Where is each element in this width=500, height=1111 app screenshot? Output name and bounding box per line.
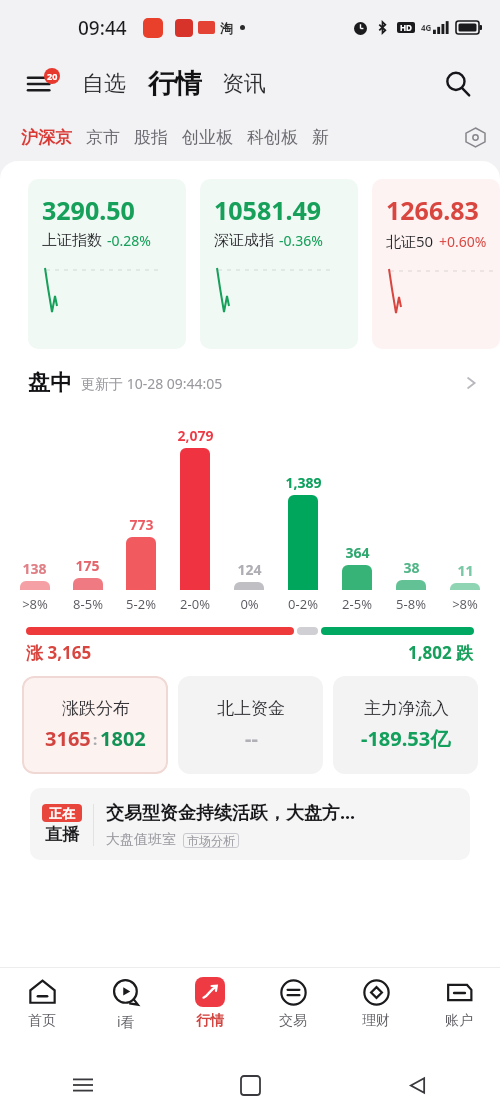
staticText: 1266.83: [386, 193, 479, 227]
staticText: 10581.49: [214, 193, 322, 227]
button[interactable]: i看: [84, 975, 168, 1059]
staticText: 138: [22, 559, 47, 578]
staticText: 更新于 10-28 09:44:05: [81, 374, 223, 393]
staticText: 175: [75, 556, 100, 575]
button[interactable]: 主力净流入: [333, 676, 478, 774]
button[interactable]: 科创板: [240, 123, 305, 152]
staticText: 直播: [45, 824, 79, 845]
button[interactable]: 自选: [80, 70, 128, 98]
staticText: 涨跌分布: [62, 698, 130, 719]
staticText: i看: [117, 1012, 135, 1031]
staticText: 行情: [196, 1012, 224, 1030]
staticText: 股指: [134, 127, 168, 148]
staticText: 5-2%: [126, 595, 156, 613]
staticText: 深证成指: [214, 231, 274, 250]
button[interactable]: 京市: [79, 123, 127, 152]
staticText: +0.60%: [439, 232, 487, 251]
staticText: 北上资金: [217, 698, 285, 719]
button[interactable]: 账户: [417, 975, 500, 1059]
staticText: 11: [457, 561, 474, 580]
staticText: 京市: [86, 127, 120, 148]
staticText: -0.36%: [279, 231, 323, 250]
button[interactable]: More tabs: [458, 120, 492, 154]
button[interactable]: 首页: [0, 975, 84, 1059]
staticText: 0%: [240, 595, 259, 613]
staticText: 沪深京: [21, 127, 72, 148]
staticText: 8-5%: [73, 595, 103, 613]
staticText: 38: [403, 558, 420, 577]
staticText: 盘中: [28, 369, 72, 397]
button[interactable]: 行情: [146, 67, 204, 101]
staticText: --: [245, 725, 258, 752]
button[interactable]: 盘中: [0, 369, 500, 397]
staticText: -0.28%: [107, 231, 151, 250]
staticText: >8%: [452, 595, 478, 613]
staticText: 账户: [445, 1012, 473, 1030]
staticText: 新: [312, 127, 329, 148]
button[interactable]: Recents: [63, 1065, 103, 1105]
staticText: 涨 3,165: [26, 641, 92, 664]
button[interactable]: 交易: [251, 975, 334, 1059]
button[interactable]: 股指: [127, 123, 175, 152]
staticText: >8%: [22, 595, 48, 613]
button[interactable]: 创业板: [175, 123, 240, 152]
button[interactable]: 1266.83: [372, 179, 500, 349]
staticText: 4G: [421, 22, 432, 33]
staticText: 1802: [100, 725, 146, 752]
staticText: 创业板: [182, 127, 233, 148]
staticText: 资讯: [222, 70, 266, 98]
button[interactable]: 资讯: [220, 70, 268, 98]
staticText: 1,802 跌: [408, 641, 474, 664]
button[interactable]: 行情: [168, 975, 251, 1059]
staticText: 大盘值班室: [106, 831, 176, 849]
button[interactable]: 10581.49: [200, 179, 358, 349]
button[interactable]: Search: [438, 64, 478, 104]
staticText: 正在: [49, 805, 75, 821]
button[interactable]: 新: [305, 123, 336, 152]
button[interactable]: Menu: [22, 65, 60, 103]
button[interactable]: 涨跌分布: [22, 676, 168, 774]
staticText: 3290.50: [42, 193, 135, 227]
staticText: 3165: [45, 725, 91, 752]
staticText: 主力净流入: [364, 698, 449, 719]
staticText: 理财: [362, 1012, 390, 1030]
button[interactable]: Back: [397, 1065, 437, 1105]
staticText: 773: [129, 515, 154, 534]
staticText: 淘: [220, 20, 233, 36]
button[interactable]: 3290.50: [28, 179, 186, 349]
staticText: 行情: [148, 67, 202, 101]
staticText: 0-2%: [288, 595, 318, 613]
staticText: 20: [47, 70, 58, 82]
button[interactable]: 沪深京: [14, 123, 79, 152]
staticText: 5-8%: [396, 595, 426, 613]
staticText: 交易型资金持续活跃，大盘方...: [106, 800, 356, 825]
button[interactable]: 北上资金: [178, 676, 323, 774]
staticText: 2,079: [177, 426, 214, 445]
button[interactable]: Home: [230, 1065, 270, 1105]
staticText: 124: [237, 560, 262, 579]
staticText: 首页: [28, 1012, 56, 1030]
staticText: 09:44: [78, 15, 127, 41]
staticText: 上证指数: [42, 231, 102, 250]
staticText: 交易: [279, 1012, 307, 1030]
staticText: 2-0%: [180, 595, 210, 613]
staticText: 市场分析: [187, 833, 235, 848]
staticText: 自选: [82, 70, 126, 98]
staticText: 科创板: [247, 127, 298, 148]
staticText: :: [93, 729, 98, 749]
staticText: HD: [400, 22, 412, 33]
button[interactable]: 正在: [30, 788, 470, 860]
staticText: -189.53亿: [361, 725, 451, 752]
button[interactable]: 理财: [334, 975, 417, 1059]
staticText: 364: [345, 543, 370, 562]
staticText: 2-5%: [342, 595, 372, 613]
staticText: 北证50: [386, 231, 434, 251]
staticText: 1,389: [285, 473, 322, 492]
